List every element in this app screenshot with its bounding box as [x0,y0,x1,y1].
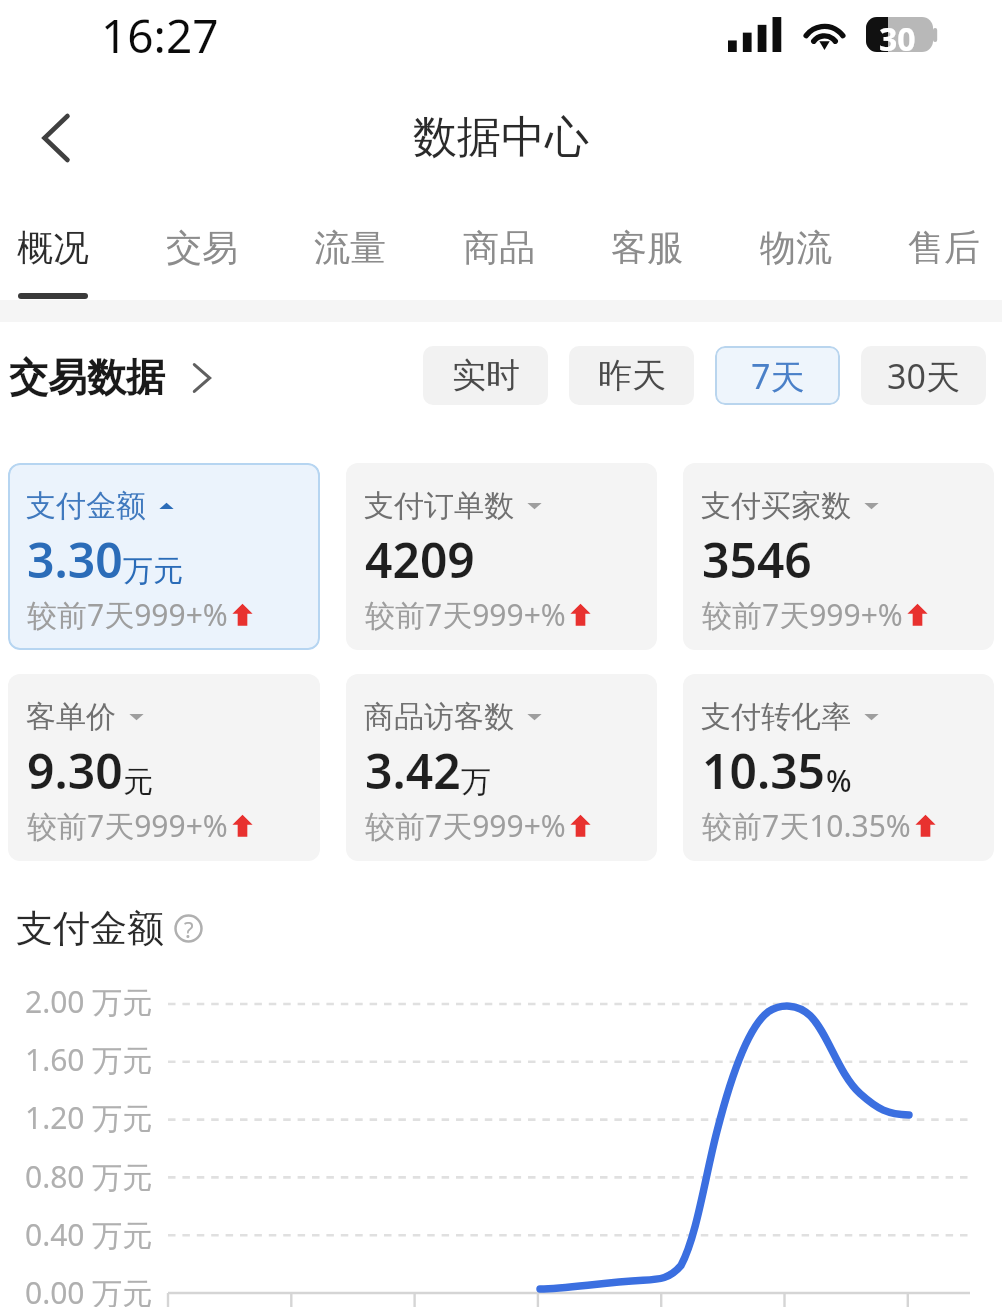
staticText: 概况 [17,225,89,270]
staticText: 0.00 万元 [25,1272,153,1307]
staticText: 较前7天999+% [702,594,903,635]
staticText: 售后 [908,225,980,270]
staticText: 客单价 [26,698,116,736]
button[interactable]: 支付转化率 [683,674,994,861]
button[interactable]: 物流 [760,195,832,300]
staticText: 0.80 万元 [25,1156,153,1197]
staticText: 9.30 [27,738,123,803]
button[interactable]: 商品 [463,195,535,300]
staticText: 较前7天10.35% [702,805,911,846]
staticText: 3.30 [27,527,123,592]
staticText: % [826,760,852,801]
staticText: 7天 [751,353,805,399]
button[interactable]: 支付买家数 [683,463,994,650]
staticText: 物流 [760,225,832,270]
button[interactable]: 7天 [715,346,840,405]
staticText: 支付订单数 [364,487,514,525]
button[interactable]: Back [11,93,101,183]
staticText: 较前7天999+% [27,594,228,635]
staticText: 实时 [452,354,520,397]
button[interactable]: 昨天 [569,346,694,405]
staticText: 昨天 [598,354,666,397]
staticText: 30天 [887,353,960,399]
button[interactable]: 概况 [17,195,89,300]
staticText: 1.60 万元 [25,1039,153,1080]
staticText: 客服 [611,225,683,270]
staticText: 3.42 [365,738,461,803]
staticText: 30 [879,17,916,52]
button[interactable]: Help [174,914,203,943]
staticText: 商品 [463,225,535,270]
button[interactable]: 客服 [611,195,683,300]
staticText: 较前7天999+% [27,805,228,846]
staticText: 3546 [702,527,812,592]
button[interactable]: 售后 [908,195,980,300]
staticText: 较前7天999+% [365,805,566,846]
staticText: 10.35 [702,738,826,803]
staticText: 16:27 [101,4,219,67]
staticText: 支付金额 [26,487,146,525]
button[interactable]: 交易 [166,195,238,300]
button[interactable]: 支付金额 [8,463,320,650]
staticText: 支付金额 [16,905,164,952]
button[interactable]: 流量 [314,195,386,300]
button[interactable]: 交易数据 [9,353,213,402]
staticText: 交易 [166,225,238,270]
staticText: 万 [461,763,491,801]
staticText: 商品访客数 [364,698,514,736]
staticText: 交易数据 [9,353,165,402]
staticText: 较前7天999+% [365,594,566,635]
button[interactable]: 商品访客数 [346,674,657,861]
staticText: 流量 [314,225,386,270]
staticText: 1.20 万元 [25,1097,153,1138]
button[interactable]: 实时 [423,346,548,405]
staticText: 元 [123,763,153,801]
staticText: 0.40 万元 [25,1214,153,1255]
staticText: ? [184,914,194,943]
button[interactable]: 支付订单数 [346,463,657,650]
staticText: 支付买家数 [701,487,851,525]
button[interactable]: 客单价 [8,674,320,861]
button[interactable]: 30天 [861,346,986,405]
staticText: 2.00 万元 [25,981,153,1022]
staticText: 数据中心 [413,110,589,165]
staticText: 万元 [123,552,183,590]
staticText: 支付转化率 [701,698,851,736]
staticText: 4209 [365,527,475,592]
